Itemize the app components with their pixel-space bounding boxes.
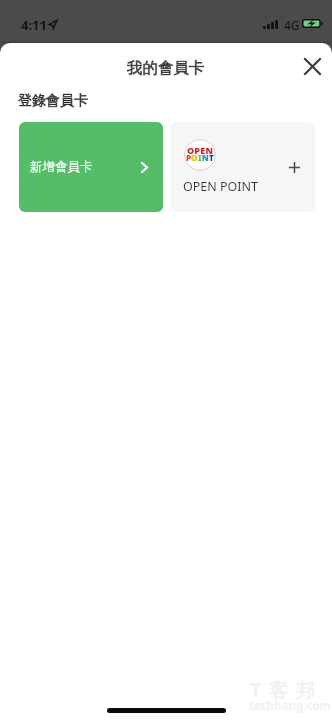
staticText: N bbox=[202, 152, 209, 163]
staticText: 登錄會員卡 bbox=[18, 92, 88, 110]
staticText: OPEN POINT bbox=[183, 178, 259, 195]
staticText: T bbox=[209, 152, 214, 163]
staticText: 我的會員卡 bbox=[127, 58, 205, 78]
staticText: O bbox=[191, 152, 198, 163]
staticText: 4G bbox=[284, 17, 300, 33]
staticText: techbang.com bbox=[249, 698, 331, 714]
staticText: I bbox=[198, 152, 202, 163]
staticText: T客邦 bbox=[250, 677, 323, 703]
staticText: 4:11 bbox=[21, 16, 47, 34]
button[interactable]: 新增會員卡 bbox=[19, 122, 163, 212]
staticText: 登錄會員卡 bbox=[18, 92, 88, 110]
staticText: OPEN bbox=[187, 144, 214, 156]
button[interactable]: OPEN bbox=[170, 122, 315, 212]
staticText: P bbox=[186, 152, 191, 163]
staticText: 我的會員卡 bbox=[127, 58, 205, 78]
staticText: 新增會員卡 bbox=[30, 159, 93, 175]
button[interactable]: Close bbox=[293, 47, 331, 85]
